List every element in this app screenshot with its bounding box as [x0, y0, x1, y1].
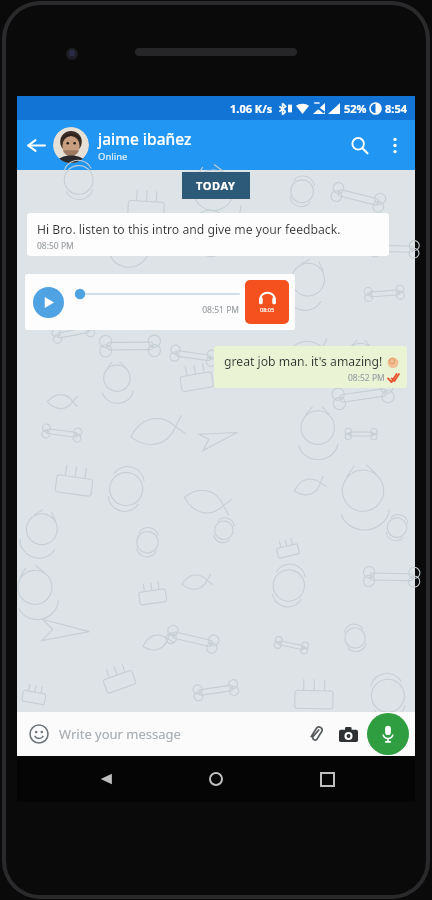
button[interactable]: Search — [339, 120, 379, 170]
staticText: 08:50 PM — [37, 240, 74, 252]
button[interactable]: Record voice message — [367, 713, 409, 755]
button[interactable]: Recent apps — [305, 757, 349, 801]
button[interactable]: Back — [17, 120, 53, 170]
button[interactable]: TODAY — [196, 178, 236, 193]
staticText: 08:52 PM — [348, 372, 385, 384]
button[interactable]: great job man. it's amazing! — [214, 346, 407, 388]
button[interactable]: Audio file 08:05 — [245, 280, 289, 324]
button[interactable] — [53, 127, 89, 163]
button[interactable]: Back — [84, 757, 128, 801]
button[interactable]: jaime ibañez — [98, 128, 339, 163]
button[interactable]: Attach — [301, 719, 331, 749]
staticText: 08:51 PM — [74, 304, 239, 316]
button[interactable]: Write your message — [59, 712, 301, 756]
staticText: 52% — [344, 101, 367, 116]
button[interactable]: Emoji — [25, 720, 53, 748]
staticText: jaime ibañez — [98, 128, 192, 149]
button[interactable]: Home — [194, 757, 238, 801]
button[interactable]: More options — [379, 120, 411, 170]
staticText: great job man. it's amazing! — [224, 353, 383, 370]
staticText: TODAY — [196, 178, 236, 193]
staticText: 08:05 — [260, 306, 275, 313]
staticText: Hi Bro. listen to this intro and give me… — [37, 221, 341, 238]
button[interactable]: Play voice message — [25, 274, 295, 330]
staticText: Online — [98, 150, 128, 163]
staticText: 1.06 K/s — [230, 101, 273, 116]
button[interactable]: Hi Bro. listen to this intro and give me… — [27, 213, 389, 256]
staticText: 8:54 — [385, 101, 407, 116]
button[interactable]: Play voice message — [33, 287, 64, 318]
staticText: Write your message — [59, 725, 181, 743]
button[interactable]: Camera — [331, 717, 365, 751]
